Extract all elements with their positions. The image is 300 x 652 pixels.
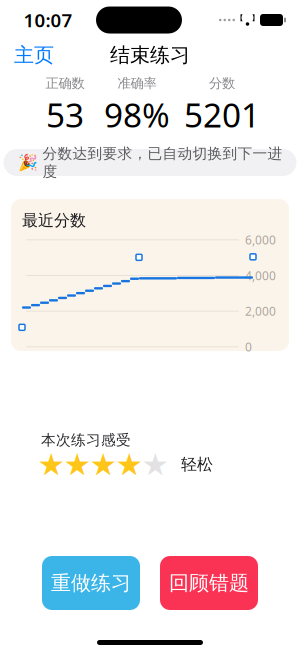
button[interactable]: Rate 3 stars [93,452,113,477]
staticText: 10:07 [23,8,72,32]
staticText: 2,000 [245,303,276,319]
staticText: ★ [115,447,142,482]
staticText: 🎉 [17,153,37,172]
staticText: 最近分数 [22,211,86,230]
button[interactable]: Rate 1 stars [41,452,61,477]
staticText: ★ [37,447,64,482]
staticText: 4,000 [245,267,276,283]
staticText: 5201 [184,93,260,137]
staticText: 分数达到要求，已自动切换到下一进度 [42,144,282,180]
staticText: ★ [141,447,168,482]
staticText: ★ [63,447,90,482]
staticText: 98% [104,93,170,137]
button[interactable]: Rate 2 stars [67,452,87,477]
staticText: 重做练习 [51,571,131,595]
staticText: 主页 [14,43,54,67]
staticText: 本次练习感受 [41,431,131,449]
staticText: 分数 [209,75,235,92]
button[interactable]: Rate 4 stars [119,452,139,477]
staticText: 准确率 [117,75,156,92]
staticText: 6,000 [245,232,276,248]
staticText: 正确数 [45,75,84,92]
staticText: 结束练习 [110,43,190,67]
button[interactable]: Rate 5 stars [145,452,165,477]
button[interactable]: 回顾错题 [160,556,258,610]
button[interactable]: 主页 [0,37,68,73]
button[interactable]: 重做练习 [42,556,140,610]
staticText: 53 [46,93,84,137]
staticText: 回顾错题 [169,571,249,595]
staticText: ★ [89,447,116,482]
staticText: 0 [245,339,252,355]
staticText: 轻松 [181,455,213,474]
